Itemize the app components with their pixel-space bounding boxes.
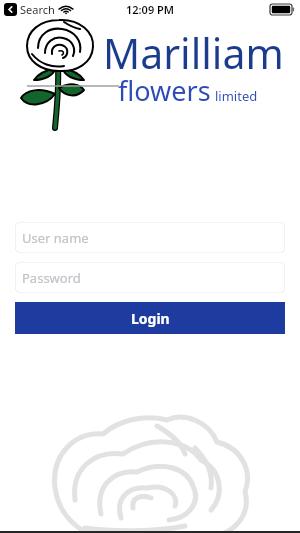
staticText: flowers [118,72,211,109]
staticText: Password [22,269,81,287]
button[interactable]: User name [15,222,285,253]
staticText: limited [215,87,258,105]
staticText: 12:09 PM [126,2,175,17]
staticText: Search [20,2,55,17]
staticText: Marilliam [103,25,284,81]
staticText: User name [22,229,89,247]
button[interactable]: Login [15,302,285,334]
button[interactable]: Password [15,262,285,293]
button[interactable]: Back [4,3,17,16]
staticText: Login [131,309,170,328]
